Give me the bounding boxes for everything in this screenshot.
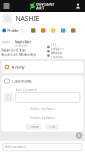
staticText: Unknown — [15, 44, 28, 47]
button[interactable]: Preview — [26, 124, 42, 130]
staticText: Add a comment — [16, 88, 37, 92]
staticText: 1,154 Watchers — [51, 48, 62, 55]
staticText: Hidden by Owner — [30, 116, 55, 120]
staticText: Profile — [7, 28, 18, 33]
staticText: Activity — [11, 64, 24, 70]
button[interactable]: Profile — [0, 25, 18, 36]
staticText: Natasha Marie — [15, 40, 32, 44]
staticText: Post — [49, 125, 55, 129]
button[interactable]: Menu — [0, 0, 13, 12]
button[interactable]: Post — [45, 124, 59, 130]
staticText: Hidden by Owner — [30, 107, 55, 111]
staticText: Add a comment — [5, 145, 26, 149]
staticText: Comments — [11, 78, 31, 84]
staticText: Preview — [29, 125, 38, 129]
staticText: Deviant — [1, 40, 10, 44]
staticText: ART — [36, 5, 44, 10]
staticText: × — [77, 131, 81, 140]
staticText: Needs Core Membership — [1, 53, 36, 56]
staticText: NASHIE — [15, 14, 39, 23]
staticText: 186 Deviations — [51, 43, 64, 51]
staticText: DEVIANT — [36, 1, 54, 7]
staticText: Deviant for 8 Years — [1, 49, 25, 52]
staticText: 37,080 Pageviews — [51, 52, 63, 59]
button[interactable]: Account — [71, 0, 85, 12]
button[interactable]: Close — [74, 131, 83, 140]
